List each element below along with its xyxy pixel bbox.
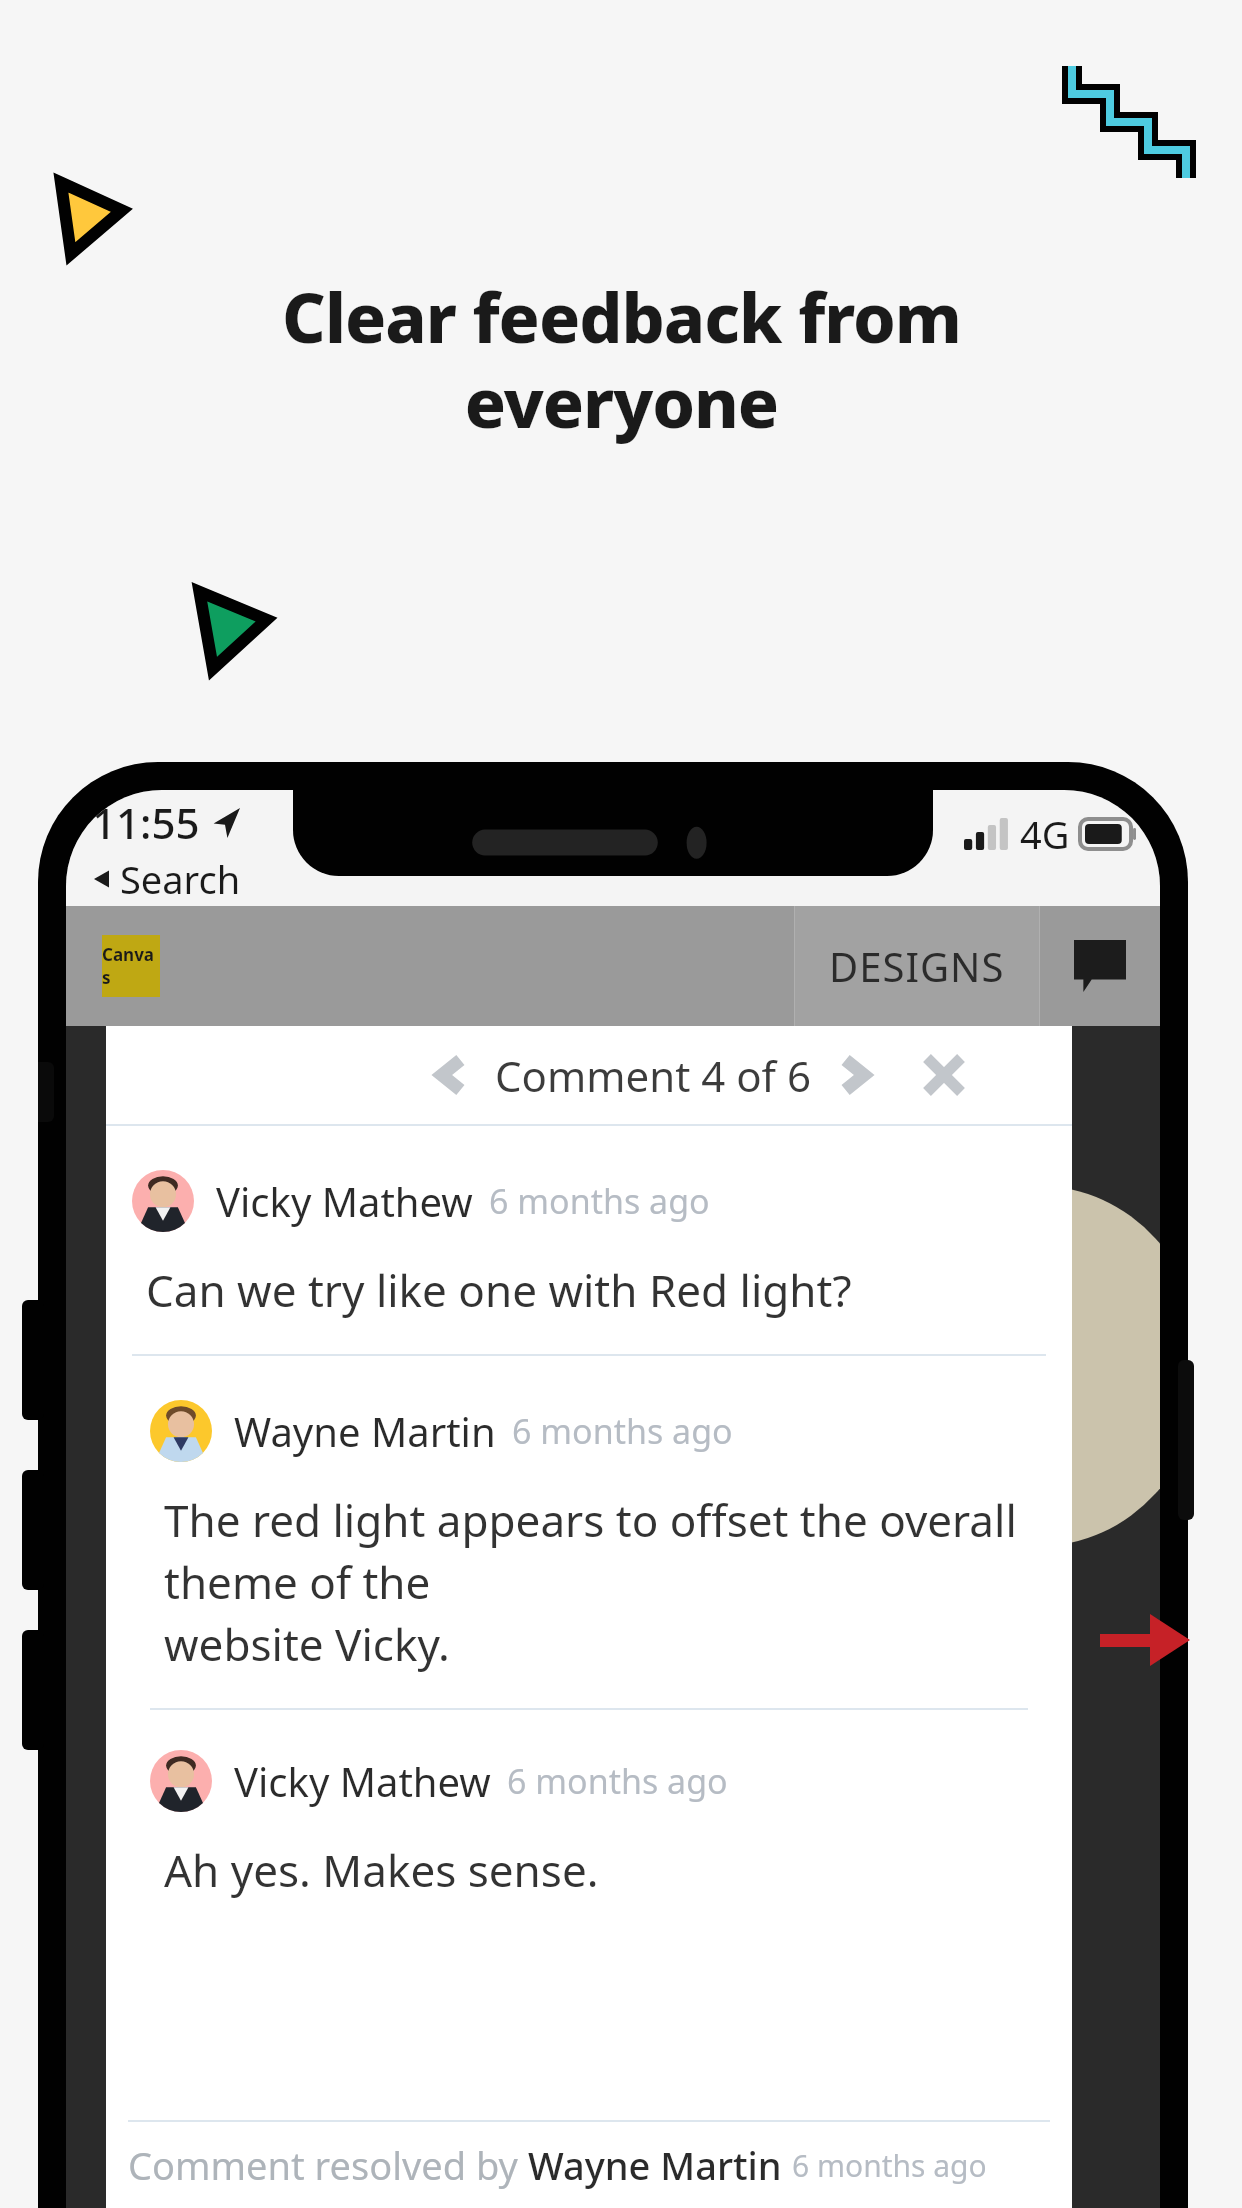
staticText: Wayne Martin [528, 2139, 782, 2191]
button[interactable]: Close [915, 1046, 973, 1104]
staticText: Canvas [102, 943, 160, 989]
button[interactable]: DESIGNS [795, 906, 1039, 1026]
staticText: 6 months ago [489, 1178, 710, 1224]
button[interactable]: Previous comment [425, 1048, 479, 1102]
staticText: Search [120, 853, 241, 905]
button[interactable]: Search [92, 853, 241, 905]
staticText: Can we try like one with Red light? [146, 1260, 852, 1320]
staticText: Clear feedback from everyone [282, 270, 961, 448]
staticText: Ah yes. Makes sense. [164, 1840, 599, 1900]
button[interactable]: Next comment [827, 1048, 881, 1102]
button[interactable]: Wayne Martin [106, 1356, 1072, 1708]
staticText: Comment 4 of 6 [495, 1047, 811, 1104]
button[interactable]: Vicky Mathew [106, 1126, 1072, 1354]
staticText: Wayne Martin [234, 1404, 496, 1458]
button[interactable]: Comment resolved by [128, 2122, 1072, 2208]
staticText: Vicky Mathew [234, 1754, 491, 1808]
button[interactable]: Vicky Mathew [106, 1710, 1072, 1934]
staticText: 6 months ago [512, 1408, 733, 1454]
staticText: 4G [1020, 808, 1070, 860]
staticText: 6 months ago [507, 1758, 728, 1804]
staticText: Vicky Mathew [216, 1174, 473, 1228]
staticText: 6 months ago [792, 2145, 987, 2186]
staticText: 11:55 [92, 794, 200, 851]
button[interactable]: Canvas home [102, 935, 160, 997]
staticText: The red light appears to offset the over… [164, 1490, 1052, 1674]
button[interactable]: Comments [1040, 906, 1160, 1026]
staticText: Comment resolved by [128, 2139, 528, 2191]
staticText: DESIGNS [829, 939, 1005, 993]
